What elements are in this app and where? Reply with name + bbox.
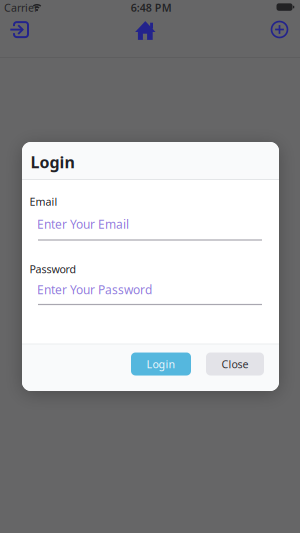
staticText: Login [30,151,74,173]
staticText: Login [146,357,175,371]
staticText: Email [29,194,57,209]
button[interactable]: Home [132,19,158,43]
staticText: Enter Your Password [37,281,152,297]
staticText: 6:48 PM [131,0,172,15]
button[interactable]: Login [9,17,33,41]
button[interactable]: Login [131,352,191,375]
staticText: Password [29,262,76,276]
staticText: Close [221,357,248,371]
button[interactable]: Add [267,17,291,41]
button[interactable]: Close [206,352,264,375]
staticText: Carrier [4,0,38,15]
staticText: Enter Your Email [37,216,129,232]
